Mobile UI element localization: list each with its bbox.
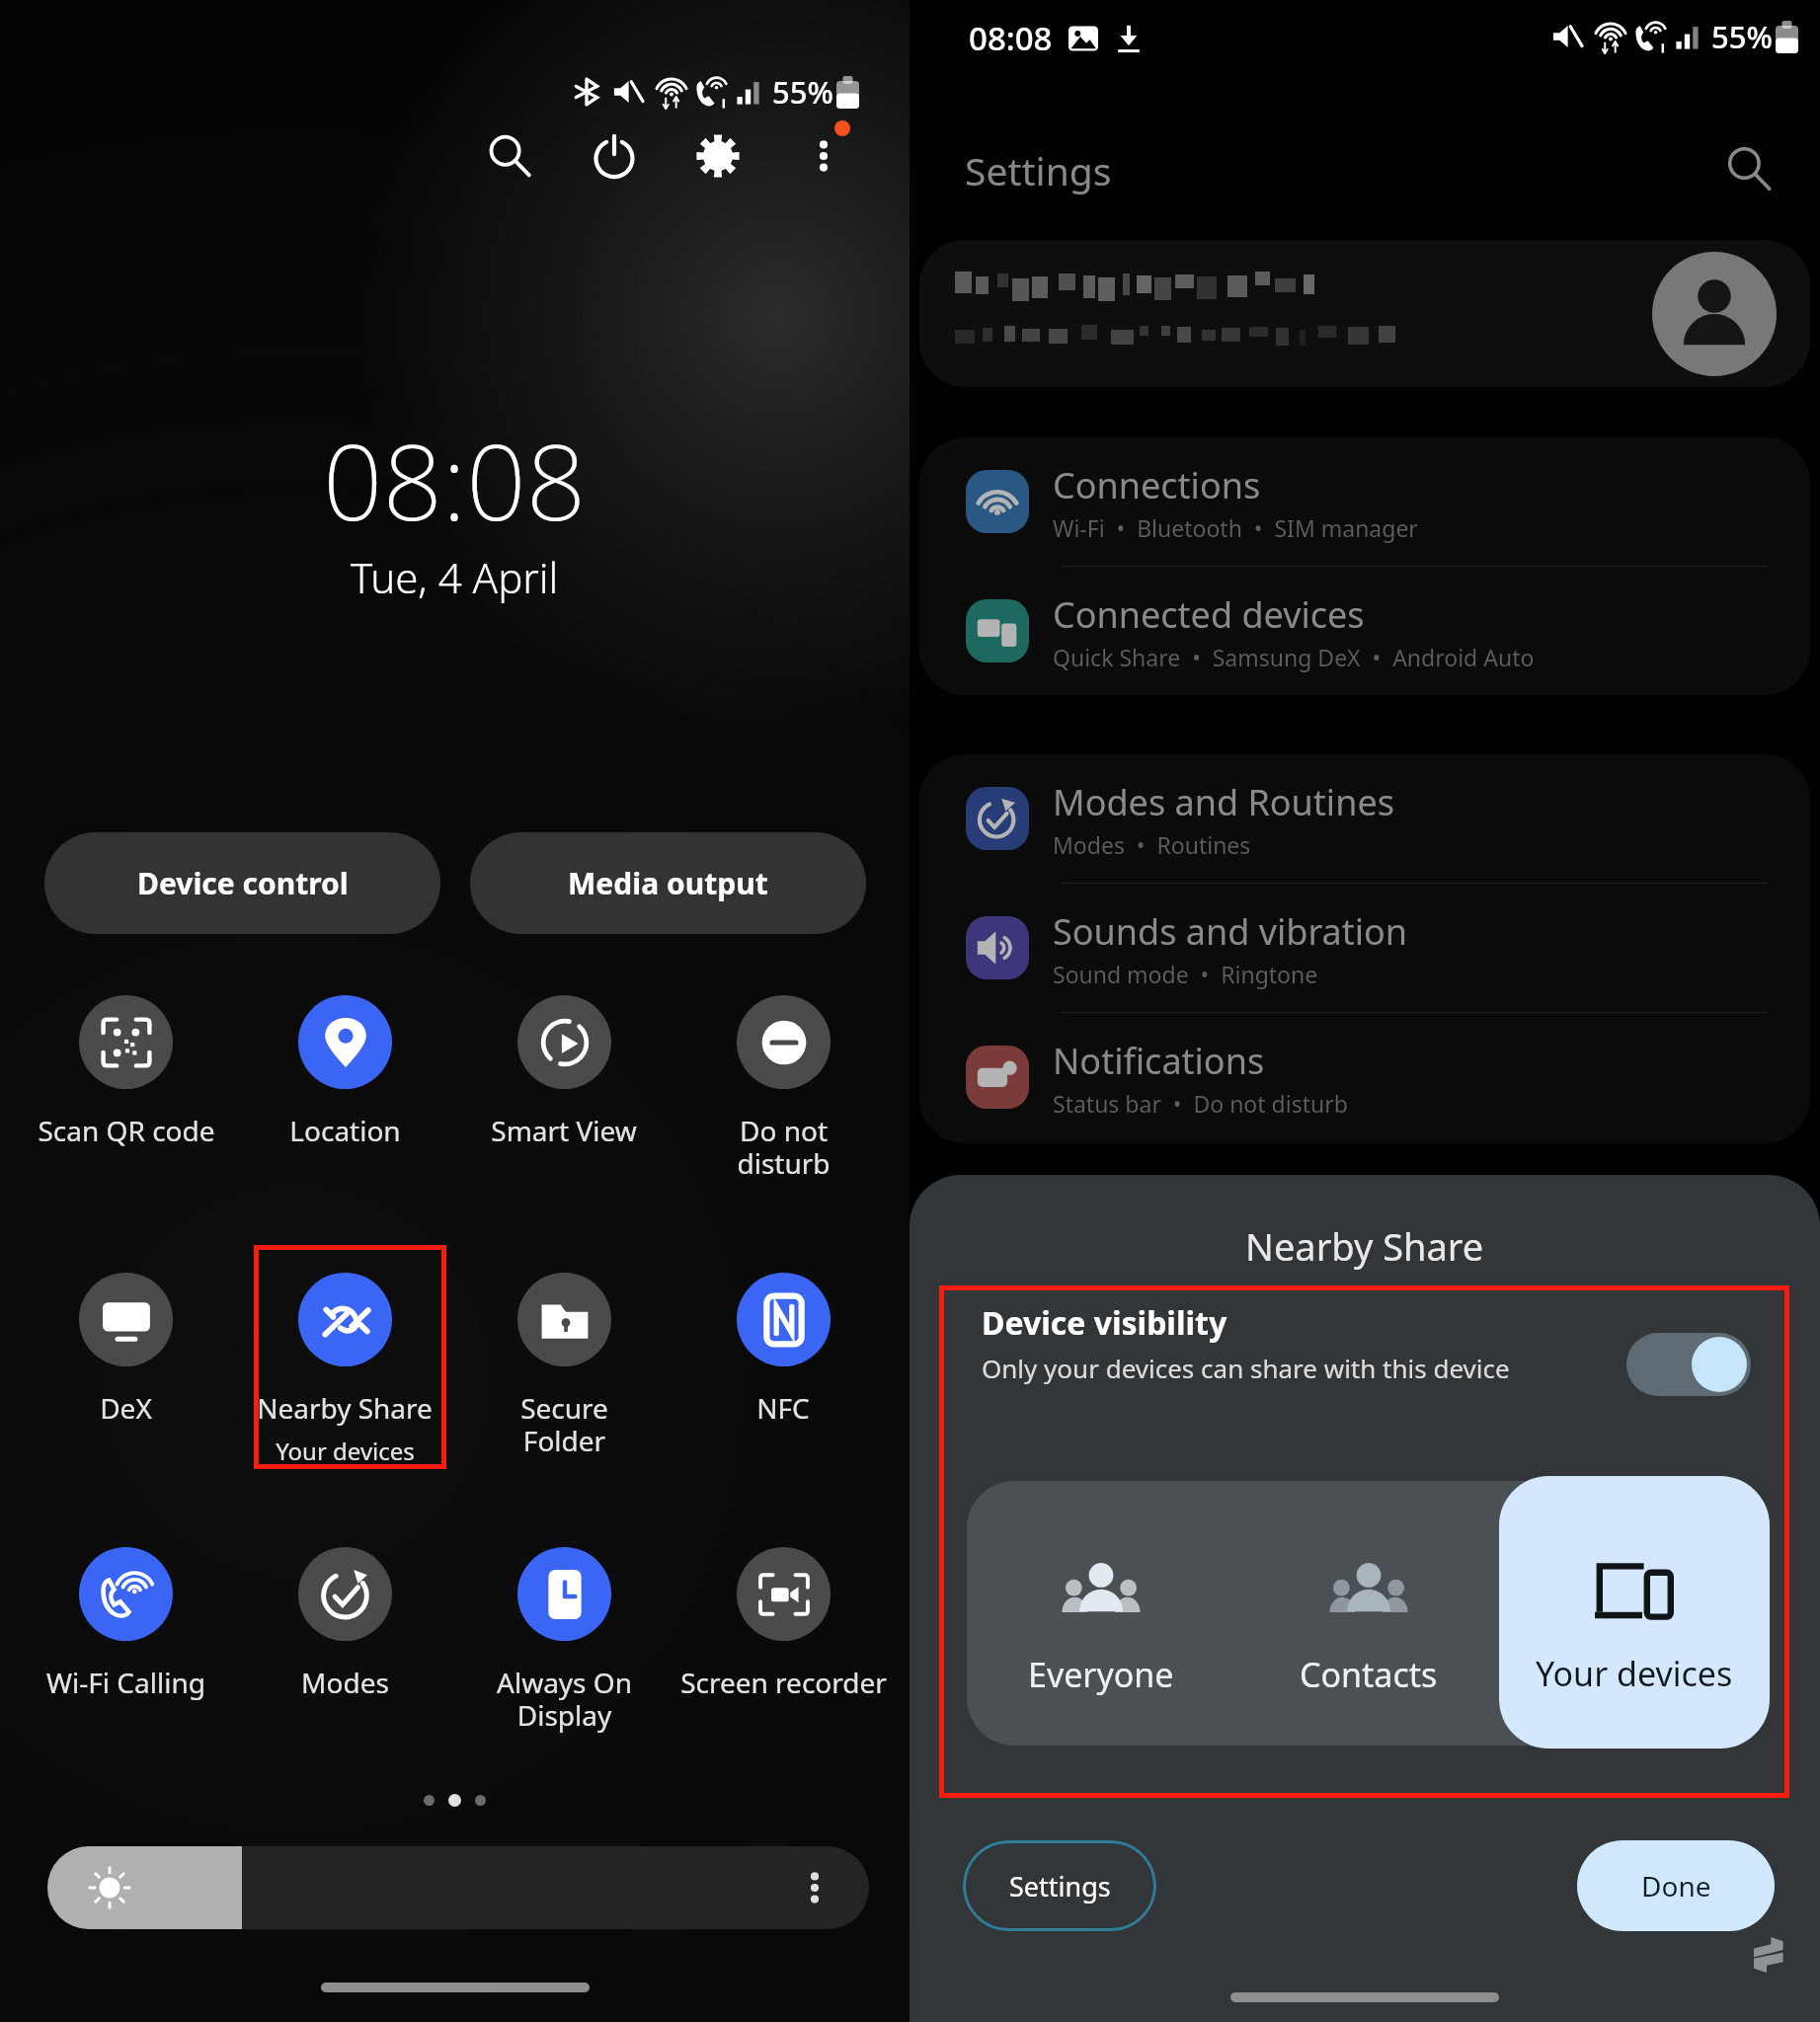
button[interactable]: Notifications — [919, 1013, 1810, 1141]
staticText: Screen recorder — [680, 1664, 887, 1701]
staticText: Secure Folder — [520, 1389, 608, 1459]
staticText: Done — [1641, 1867, 1711, 1905]
staticText: Connections — [1053, 461, 1261, 509]
staticText: Scan QR code — [38, 1112, 215, 1149]
staticText: Wi-Fi Calling — [46, 1664, 205, 1701]
staticText: 55% — [772, 71, 833, 113]
staticText: Modes — [301, 1664, 389, 1701]
staticText: 08:08 — [969, 16, 1053, 60]
staticText: Sound mode • Ringtone — [1053, 959, 1318, 989]
button[interactable]: Do not disturb — [673, 995, 893, 1182]
staticText: Device visibility — [982, 1301, 1227, 1345]
button[interactable]: Device control — [44, 832, 440, 934]
button[interactable]: Nearby Share — [235, 1273, 454, 1467]
button[interactable]: Smart View — [454, 995, 673, 1149]
staticText: NFC — [756, 1389, 810, 1427]
staticText: Your devices — [1536, 1651, 1733, 1696]
staticText: Settings — [965, 144, 1112, 196]
button[interactable]: Modes — [235, 1547, 454, 1701]
staticText: Smart View — [491, 1112, 637, 1149]
staticText: Everyone — [1028, 1652, 1174, 1697]
staticText: Contacts — [1300, 1652, 1438, 1697]
button[interactable]: Contacts — [1234, 1481, 1502, 1746]
button[interactable] — [47, 1846, 869, 1929]
button[interactable]: Settings — [685, 123, 751, 189]
button[interactable]: Settings — [963, 1840, 1156, 1931]
staticText: Only your devices can share with this de… — [982, 1351, 1510, 1385]
button[interactable]: Modes and Routines — [919, 754, 1810, 883]
button[interactable]: Search — [477, 123, 542, 189]
staticText: DeX — [100, 1389, 152, 1427]
button[interactable]: Location — [235, 995, 454, 1149]
button[interactable]: Scan QR code — [17, 995, 235, 1149]
staticText: Quick Share • Samsung DeX • Android Auto — [1053, 642, 1535, 672]
staticText: Sounds and vibration — [1053, 907, 1408, 956]
staticText: Always On Display — [497, 1664, 632, 1734]
button[interactable]: Always On Display — [454, 1547, 673, 1734]
staticText: 08:08 — [323, 409, 587, 551]
staticText: Tue, 4 April — [351, 549, 559, 605]
button[interactable] — [919, 240, 1810, 387]
staticText: 55% — [1711, 16, 1773, 57]
staticText: Do not disturb — [737, 1112, 831, 1182]
button[interactable]: Screen recorder — [673, 1547, 893, 1701]
button[interactable]: Wi-Fi Calling — [17, 1547, 235, 1701]
staticText: Nearby Share — [257, 1389, 433, 1427]
button[interactable]: Connections — [919, 437, 1810, 566]
staticText: Status bar • Do not disturb — [1053, 1088, 1348, 1119]
staticText: Settings — [1009, 1868, 1111, 1905]
staticText: Media output — [568, 863, 768, 903]
staticText: Wi-Fi • Bluetooth • SIM manager — [1053, 512, 1418, 543]
button[interactable]: Everyone — [967, 1481, 1234, 1746]
button[interactable]: Your devices — [1499, 1476, 1770, 1749]
staticText: Notifications — [1053, 1037, 1265, 1085]
button[interactable]: More options — [791, 123, 856, 189]
staticText: Your devices — [276, 1435, 415, 1467]
button[interactable]: NFC — [673, 1273, 893, 1427]
staticText: Modes • Routines — [1053, 829, 1251, 860]
button[interactable]: Done — [1577, 1840, 1775, 1931]
button[interactable]: Sounds and vibration — [919, 884, 1810, 1012]
button[interactable]: Secure Folder — [454, 1273, 673, 1459]
staticText: Connected devices — [1053, 590, 1365, 639]
staticText: Nearby Share — [1245, 1220, 1484, 1272]
button[interactable]: DeX — [17, 1273, 235, 1427]
button[interactable]: Power — [582, 123, 647, 189]
button[interactable]: Connected devices — [919, 567, 1810, 695]
staticText: Modes and Routines — [1053, 778, 1394, 826]
button[interactable]: Device visibility toggle — [1626, 1333, 1751, 1396]
button[interactable]: Search settings — [1714, 134, 1783, 203]
button[interactable]: Media output — [470, 832, 866, 934]
button[interactable]: Device visibility — [949, 1285, 1779, 1432]
staticText: Location — [289, 1112, 401, 1149]
staticText: Device control — [137, 863, 349, 903]
